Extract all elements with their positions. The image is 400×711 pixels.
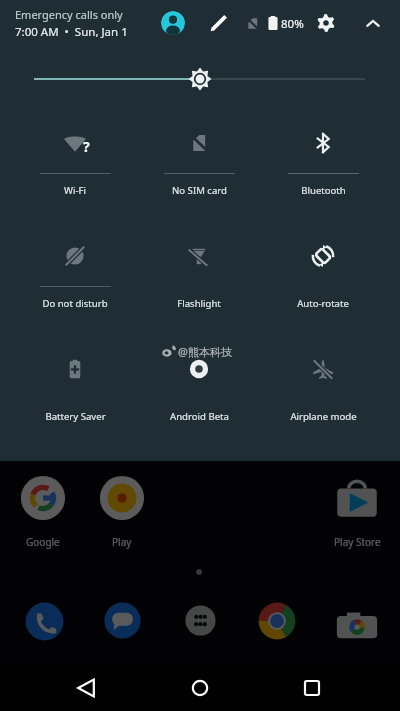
- button[interactable]: Bluetooth: [261, 113, 385, 226]
- staticText: Wi-Fi: [64, 184, 86, 197]
- button[interactable]: Collapse: [362, 13, 384, 35]
- button[interactable]: Battery Saver: [13, 339, 137, 452]
- staticText: @熊本科技: [178, 344, 232, 359]
- button[interactable]: Do not disturb: [13, 226, 137, 339]
- button[interactable]: Play Store: [317, 474, 397, 549]
- button[interactable]: Android Beta: [137, 339, 261, 452]
- button[interactable]: Camera: [329, 598, 385, 654]
- button[interactable]: Flashlight: [137, 226, 261, 339]
- staticText: Auto-rotate: [297, 297, 349, 310]
- button[interactable]: Recents: [292, 668, 332, 708]
- staticText: Battery Saver: [45, 410, 106, 423]
- button[interactable]: Airplane mode: [261, 339, 385, 452]
- button[interactable]: Back: [67, 668, 107, 708]
- button[interactable]: Google: [3, 474, 83, 549]
- button[interactable]: ?: [13, 113, 137, 226]
- staticText: No SIM card: [172, 184, 227, 197]
- button[interactable]: Edit: [208, 12, 230, 34]
- staticText: Do not disturb: [42, 297, 108, 310]
- button[interactable]: Phone: [22, 599, 67, 644]
- button[interactable]: Home: [180, 668, 220, 708]
- button[interactable]: Play: [82, 474, 162, 549]
- staticText: 7:00 AM • Sun, Jan 1: [15, 24, 128, 40]
- staticText: 80%: [281, 16, 304, 32]
- button[interactable]: Auto-rotate: [261, 226, 385, 339]
- button[interactable]: Chrome: [254, 598, 300, 644]
- staticText: Emergency calls only: [15, 7, 123, 22]
- staticText: Google: [26, 535, 60, 549]
- button[interactable]: No SIM card: [137, 113, 261, 226]
- staticText: ?: [83, 137, 90, 156]
- button[interactable]: Settings: [317, 14, 335, 32]
- button[interactable]: All apps: [179, 599, 222, 642]
- button[interactable]: Messages: [101, 599, 144, 642]
- button[interactable]: Brightness: [0, 46, 400, 92]
- staticText: Airplane mode: [290, 410, 357, 423]
- button[interactable]: User: [161, 11, 185, 35]
- staticText: Play Store: [334, 535, 381, 549]
- staticText: Play: [112, 535, 132, 549]
- staticText: Android Beta: [170, 410, 229, 423]
- staticText: Bluetooth: [301, 184, 346, 197]
- staticText: Flashlight: [177, 297, 221, 310]
